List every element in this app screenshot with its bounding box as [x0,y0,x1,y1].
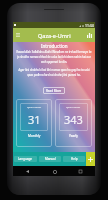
staticText: 343 [64,112,83,127]
button[interactable]: Help [63,156,85,162]
staticText: Language [18,157,33,161]
staticText: Monthly [28,134,41,138]
staticText: Read More [46,89,62,93]
button[interactable]: Read More [43,87,65,94]
staticText: Agar kisi shakhs ki koi bhi namaz qaza h… [16,68,92,77]
button[interactable]: Qaza Namaz [16,99,52,147]
staticText: 11:34 [85,23,94,28]
button[interactable]: Home [51,168,58,175]
button[interactable]: Add [86,152,95,166]
staticText: Qaza Namaz [27,105,42,108]
staticText: Qaza Namaz [66,105,81,108]
staticText: 31 [28,112,41,127]
staticText: Manual [45,157,56,161]
button[interactable]: Back [24,168,31,175]
button[interactable]: Statistics [85,31,94,40]
button[interactable]: Language [14,156,37,162]
button[interactable]: Recents [77,168,84,175]
staticText: Yearly [69,134,78,138]
staticText: Rasoolullah Sallallahu Alaihi Wasallam n… [16,50,92,64]
button[interactable]: Menu [14,31,22,39]
button[interactable]: Manual [39,156,61,162]
staticText: Introduction [41,43,68,49]
button[interactable]: Qaza Namaz [55,99,92,147]
staticText: Help [71,157,78,161]
staticText: Qaza-e-Umri [38,32,71,39]
